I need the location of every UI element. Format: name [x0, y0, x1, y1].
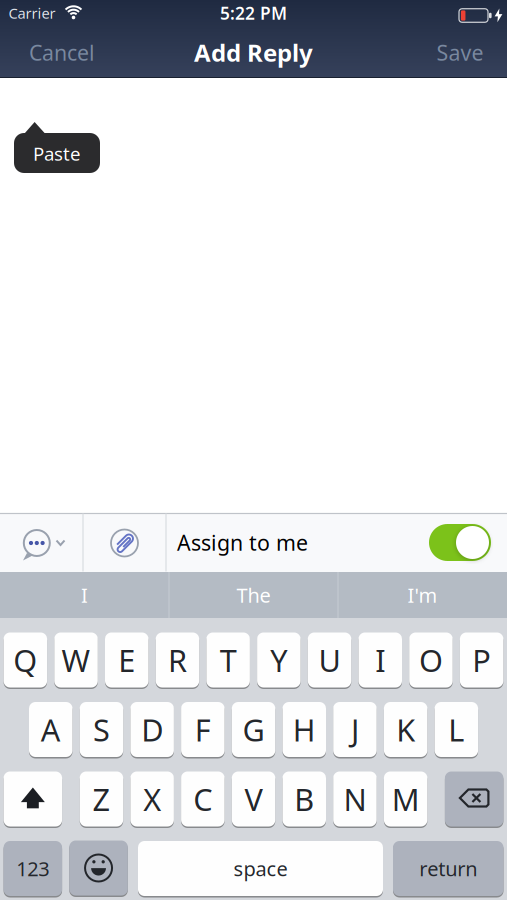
staticText: V	[245, 779, 263, 819]
button[interactable]: K	[384, 701, 427, 758]
staticText: Assign to me	[177, 528, 308, 557]
staticText: Z	[92, 779, 110, 819]
staticText: I'm	[407, 582, 437, 608]
button[interactable]: H	[282, 701, 326, 758]
staticText: The	[236, 582, 270, 608]
button[interactable]: B	[282, 770, 326, 827]
staticText: I	[375, 640, 385, 680]
button[interactable]: 123	[4, 840, 62, 897]
staticText: Y	[270, 640, 287, 680]
staticText: O	[419, 640, 443, 680]
staticText: Q	[13, 640, 37, 680]
staticText: M	[392, 779, 420, 819]
button[interactable]	[429, 524, 491, 561]
staticText: Add Reply	[194, 37, 313, 68]
staticText: D	[141, 709, 163, 750]
button[interactable]: Save	[420, 27, 500, 78]
button[interactable]: V	[232, 770, 275, 827]
staticText: Cancel	[29, 38, 95, 67]
button[interactable]: I'm	[338, 572, 506, 618]
staticText: I	[81, 582, 88, 608]
staticText: T	[220, 640, 237, 680]
staticText: Save	[436, 38, 483, 67]
button[interactable]: I	[358, 631, 402, 688]
button[interactable]: G	[232, 701, 275, 758]
staticText: N	[343, 779, 366, 819]
staticText: R	[168, 640, 187, 680]
staticText: S	[93, 709, 110, 750]
button[interactable]	[83, 513, 166, 571]
staticText: L	[448, 709, 464, 750]
staticText: W	[62, 640, 91, 680]
staticText: 123	[16, 855, 49, 882]
button[interactable]: The	[169, 572, 337, 618]
button[interactable]: I	[0, 572, 168, 618]
staticText: E	[118, 640, 135, 680]
button[interactable]: Y	[257, 631, 301, 688]
button[interactable]: return	[393, 840, 503, 897]
staticText: G	[243, 709, 265, 750]
button[interactable]: X	[130, 770, 174, 827]
staticText: return	[419, 855, 477, 882]
staticText: A	[41, 709, 61, 750]
staticText: P	[472, 640, 491, 680]
button[interactable]	[69, 839, 128, 896]
staticText: Carrier	[8, 3, 55, 23]
button[interactable]: N	[333, 770, 377, 827]
button[interactable]: T	[206, 631, 250, 688]
staticText: J	[351, 709, 359, 750]
button[interactable]: Paste	[14, 121, 100, 173]
staticText: K	[396, 709, 415, 750]
button[interactable]: J	[333, 701, 377, 758]
button[interactable]: F	[181, 701, 225, 758]
staticText: F	[195, 709, 211, 750]
button[interactable]: A	[29, 701, 72, 758]
button[interactable]: Q	[4, 631, 47, 688]
button[interactable]: space	[138, 840, 383, 897]
button[interactable]: M	[384, 770, 427, 827]
staticText: H	[293, 709, 316, 750]
button[interactable]: E	[105, 631, 148, 688]
button[interactable]: Cancel	[14, 27, 110, 78]
staticText: B	[294, 779, 314, 819]
staticText: 5:22 PM	[220, 1, 287, 24]
staticText: U	[319, 640, 341, 680]
button[interactable]: W	[54, 631, 98, 688]
button[interactable]: P	[460, 631, 503, 688]
staticText: C	[193, 779, 212, 819]
staticText: space	[233, 855, 287, 882]
button[interactable]: Z	[80, 770, 123, 827]
button[interactable]: C	[181, 770, 225, 827]
button[interactable]: R	[156, 631, 199, 688]
button[interactable]	[0, 513, 82, 571]
button[interactable]: O	[409, 631, 453, 688]
button[interactable]	[4, 770, 62, 827]
staticText: Paste	[33, 141, 81, 166]
button[interactable]: L	[435, 701, 478, 758]
button[interactable]: U	[308, 631, 351, 688]
button[interactable]: D	[130, 701, 174, 758]
staticText: X	[143, 779, 161, 819]
button[interactable]	[445, 770, 503, 827]
button[interactable]: S	[80, 701, 123, 758]
